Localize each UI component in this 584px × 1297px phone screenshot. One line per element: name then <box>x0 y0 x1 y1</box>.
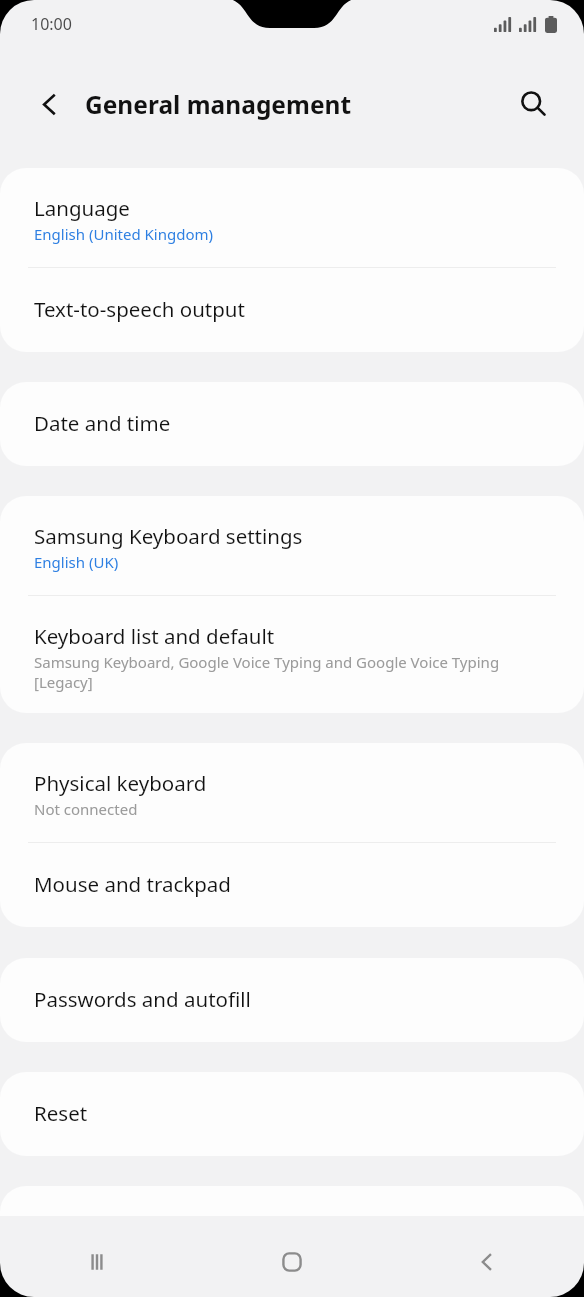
button[interactable]: Keyboard list and default <box>0 596 584 713</box>
button[interactable]: Reset <box>0 1072 584 1156</box>
staticText: Date and time <box>34 409 171 437</box>
staticText: Samsung Keyboard settings <box>34 522 303 550</box>
button[interactable]: Date and time <box>0 382 584 466</box>
staticText: General management <box>85 88 352 121</box>
staticText: Passwords and autofill <box>34 985 251 1013</box>
button[interactable]: Back <box>389 1227 584 1297</box>
button[interactable]: Mouse and trackpad <box>0 843 584 927</box>
staticText: Reset <box>34 1099 88 1127</box>
staticText: Language <box>34 194 130 222</box>
button[interactable]: Physical keyboard <box>0 743 584 842</box>
staticText: Not connected <box>34 799 138 819</box>
button[interactable]: Home <box>194 1227 389 1297</box>
staticText: Text-to-speech output <box>34 295 245 323</box>
button[interactable]: Samsung Keyboard settings <box>0 496 584 595</box>
staticText: English (UK) <box>34 552 119 572</box>
button[interactable]: Passwords and autofill <box>0 958 584 1042</box>
staticText: Physical keyboard <box>34 769 207 797</box>
button[interactable]: Text-to-speech output <box>0 268 584 352</box>
button[interactable]: Language <box>0 168 584 267</box>
button[interactable]: Back <box>20 75 78 133</box>
staticText: Mouse and trackpad <box>34 870 231 898</box>
staticText: 10:00 <box>31 13 72 35</box>
staticText: Samsung Keyboard, Google Voice Typing an… <box>34 652 554 692</box>
button[interactable]: Search <box>504 75 562 133</box>
button[interactable]: Recents <box>0 1227 194 1297</box>
staticText: English (United Kingdom) <box>34 224 214 244</box>
staticText: Keyboard list and default <box>34 622 275 650</box>
